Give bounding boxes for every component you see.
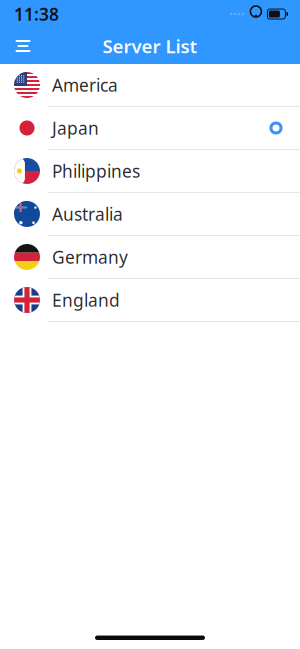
staticText: Germany bbox=[52, 245, 128, 268]
button[interactable]: Menu bbox=[6, 28, 40, 64]
staticText: America bbox=[52, 73, 118, 96]
button[interactable]: Philippines bbox=[0, 150, 300, 193]
button[interactable]: Germany bbox=[0, 236, 300, 279]
staticText: Philippines bbox=[52, 159, 140, 182]
button[interactable]: America bbox=[0, 64, 300, 107]
staticText: 11:38 bbox=[14, 2, 59, 25]
staticText: Australia bbox=[52, 202, 123, 225]
staticText: Japan bbox=[52, 116, 99, 139]
button[interactable]: Australia bbox=[0, 193, 300, 236]
staticText: England bbox=[52, 288, 120, 311]
button[interactable]: England bbox=[0, 279, 300, 322]
staticText: Server List bbox=[102, 34, 197, 58]
button[interactable]: Japan bbox=[0, 107, 300, 150]
